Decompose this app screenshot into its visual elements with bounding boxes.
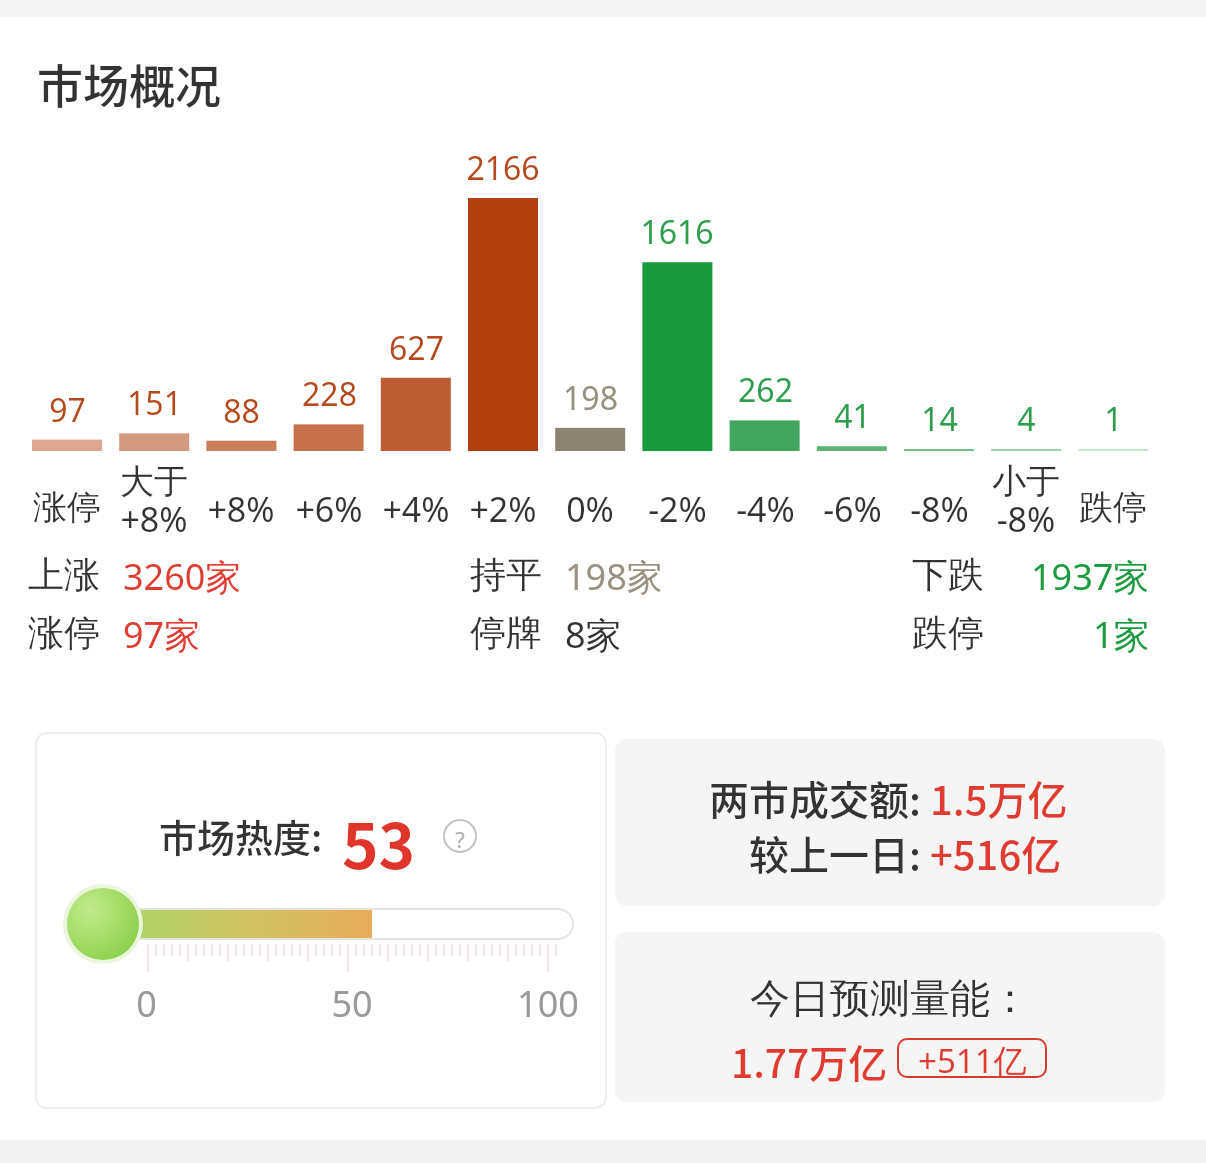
button[interactable] (615, 739, 1165, 906)
staticText: 2166 (466, 146, 540, 190)
staticText: +4% (382, 486, 450, 532)
staticText: 较上一日: (749, 824, 921, 882)
staticText: -4% (736, 486, 795, 532)
button[interactable] (440, 816, 480, 856)
staticText: 1家 (1093, 610, 1150, 659)
staticText: -6% (823, 486, 882, 532)
staticText: +8% (207, 486, 275, 532)
staticText: 小于 -8% (992, 460, 1060, 542)
staticText: 1.5万亿 (930, 769, 1068, 827)
staticText: 1616 (640, 210, 714, 254)
staticText: 3260家 (123, 552, 242, 601)
staticText: 97 (49, 388, 86, 432)
staticText: 市场热度: (159, 808, 323, 863)
staticText: ? (455, 824, 465, 854)
staticText: 市场概况 (37, 50, 221, 117)
staticText: 0 (136, 979, 157, 1028)
button[interactable] (35, 732, 607, 1109)
staticText: 627 (389, 326, 444, 370)
staticText: +511亿 (918, 1038, 1027, 1078)
staticText: 1.77万亿 (731, 1033, 888, 1089)
staticText: 50 (331, 979, 373, 1028)
staticText: +2% (469, 486, 537, 532)
staticText: 涨停 (33, 486, 101, 529)
staticText: -2% (648, 486, 707, 532)
staticText: 上涨 (28, 552, 100, 597)
staticText: 41 (834, 394, 871, 438)
staticText: 跌停 (1079, 486, 1147, 529)
staticText: 跌停 (912, 610, 984, 655)
button[interactable]: +511亿 (897, 1038, 1047, 1078)
staticText: 今日预测量能： (750, 973, 1030, 1023)
staticText: 0% (566, 486, 614, 532)
staticText: 53 (342, 797, 416, 887)
staticText: 大于 +8% (120, 460, 188, 542)
staticText: 228 (302, 372, 357, 416)
staticText: 涨停 (28, 610, 100, 655)
staticText: 1 (1104, 397, 1123, 441)
staticText: +6% (295, 486, 363, 532)
staticText: 88 (223, 389, 260, 433)
staticText: 198家 (565, 552, 663, 601)
staticText: 100 (517, 979, 579, 1028)
staticText: 97家 (123, 610, 201, 659)
button[interactable] (615, 932, 1165, 1102)
staticText: 262 (738, 368, 793, 412)
staticText: -8% (910, 486, 969, 532)
staticText: 14 (921, 397, 958, 441)
staticText: 1937家 (1031, 552, 1150, 601)
staticText: 下跌 (912, 552, 984, 597)
staticText: 停牌 (470, 610, 542, 655)
staticText: 198 (563, 376, 618, 420)
staticText: 151 (127, 381, 182, 425)
staticText: +516亿 (930, 824, 1062, 882)
staticText: 4 (1017, 397, 1036, 441)
staticText: 持平 (470, 552, 542, 597)
staticText: 两市成交额: (709, 769, 921, 827)
staticText: 8家 (565, 610, 622, 659)
